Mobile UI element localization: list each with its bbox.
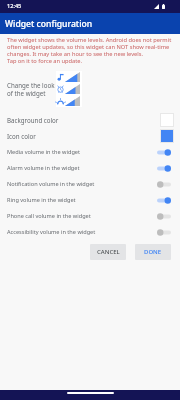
staticText: Alarm volume in the widget [7,164,157,172]
staticText: Accessibility volume in the widget [7,228,157,236]
staticText: Icon color [7,132,36,140]
staticText: Ring volume in the widget [7,196,157,204]
staticText: Notification volume in the widget [7,180,157,188]
staticText: CANCEL [97,248,120,256]
button[interactable]: Icon color [0,128,180,144]
button[interactable]: CANCEL [90,244,126,260]
staticText: The widget shows the volume levels. Andr… [7,36,176,65]
button[interactable]: Background color [0,112,180,128]
staticText: 12:45 [7,2,22,10]
staticText: DONE [144,248,162,256]
button[interactable]: Accessibility volume in the widget [0,224,180,240]
staticText: Change the look of the widget [7,81,55,97]
staticText: Media volume in the widget [7,148,157,156]
button[interactable]: Phone call volume in the widget [0,208,180,224]
button[interactable]: Alarm volume in the widget [0,160,180,176]
staticText: Widget configuration [5,18,93,30]
staticText: Background color [7,116,59,124]
button[interactable]: Ring volume in the widget [0,192,180,208]
button[interactable]: Change the look of the widget [0,71,180,107]
staticText: Phone call volume in the widget [7,212,157,220]
button[interactable]: DONE [135,244,171,260]
button[interactable]: Media volume in the widget [0,144,180,160]
button[interactable]: Notification volume in the widget [0,176,180,192]
